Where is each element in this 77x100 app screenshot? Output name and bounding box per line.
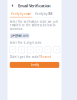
button[interactable]: Verify by SMS — [32, 11, 55, 18]
staticText: Enter the 6-digit code — [10, 41, 42, 45]
staticText: Resend — [40, 55, 51, 59]
button[interactable]: Code digit — [54, 46, 60, 53]
staticText: Verify by SMS — [35, 12, 52, 16]
button[interactable]: Back — [10, 3, 15, 8]
staticText: Verify — [30, 63, 38, 67]
staticText: Email Verification — [18, 3, 51, 8]
staticText: Verify by email — [11, 12, 31, 16]
staticText: Enter the verification code we just emai… — [10, 20, 58, 31]
button[interactable]: Code digit — [36, 46, 42, 53]
button[interactable]: Didn't get the code? — [10, 55, 59, 59]
button[interactable]: Code digit — [10, 46, 16, 53]
staticText: ja••@mail.com — [11, 34, 28, 37]
button[interactable]: Code digit — [27, 46, 33, 53]
button[interactable]: Code digit — [45, 46, 51, 53]
staticText: Didn't get the code? — [10, 55, 40, 59]
button[interactable]: Code digit — [18, 46, 25, 53]
button[interactable]: Verify by email — [10, 11, 32, 18]
button[interactable]: Verify — [10, 62, 59, 68]
